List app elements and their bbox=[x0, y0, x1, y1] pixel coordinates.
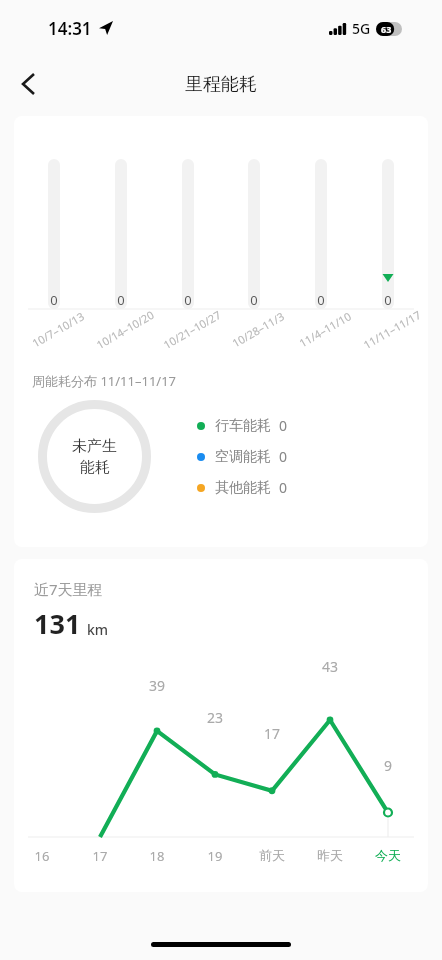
staticText: 0 bbox=[244, 291, 264, 309]
staticText: 10/14–10/20 bbox=[91, 305, 159, 353]
staticText: 行车能耗 bbox=[215, 417, 271, 435]
staticText: 0 bbox=[279, 447, 288, 466]
staticText: 17 bbox=[256, 724, 288, 743]
staticText: 9 bbox=[372, 756, 404, 775]
button[interactable]: Back bbox=[6, 62, 50, 106]
staticText: 43 bbox=[314, 657, 346, 676]
staticText: 能耗 bbox=[80, 458, 110, 477]
staticText: 63 bbox=[381, 23, 392, 35]
staticText: 17 bbox=[80, 847, 120, 865]
staticText: 131 bbox=[34, 605, 81, 642]
staticText: 16 bbox=[22, 847, 62, 865]
staticText: 未产生 bbox=[72, 437, 117, 456]
staticText: 10/28–11/3 bbox=[224, 305, 292, 353]
staticText: 0 bbox=[111, 291, 131, 309]
staticText: 其他能耗 bbox=[215, 479, 271, 497]
staticText: 昨天 bbox=[310, 847, 350, 863]
staticText: 前天 bbox=[252, 847, 292, 863]
staticText: 10/21–10/27 bbox=[158, 305, 226, 353]
staticText: 5G bbox=[352, 19, 371, 38]
staticText: 空调能耗 bbox=[215, 448, 271, 466]
staticText: 11/11–11/17 bbox=[358, 305, 426, 353]
staticText: 0 bbox=[279, 416, 288, 435]
staticText: 0 bbox=[44, 291, 64, 309]
staticText: 近7天里程 bbox=[34, 579, 103, 599]
staticText: 周能耗分布 11/11–11/17 bbox=[32, 372, 177, 390]
staticText: 0 bbox=[178, 291, 198, 309]
staticText: 10/7–10/13 bbox=[24, 305, 92, 353]
staticText: km bbox=[87, 620, 109, 639]
staticText: 里程能耗 bbox=[185, 73, 257, 96]
staticText: 11/4–11/10 bbox=[291, 305, 359, 353]
staticText: 14:31 bbox=[48, 17, 92, 40]
staticText: 0 bbox=[279, 478, 288, 497]
staticText: 39 bbox=[141, 676, 173, 695]
staticText: 0 bbox=[311, 291, 331, 309]
staticText: 23 bbox=[199, 708, 231, 727]
staticText: 0 bbox=[378, 291, 398, 309]
staticText: 18 bbox=[137, 847, 177, 865]
staticText: 19 bbox=[195, 847, 235, 865]
staticText: 今天 bbox=[368, 847, 408, 863]
